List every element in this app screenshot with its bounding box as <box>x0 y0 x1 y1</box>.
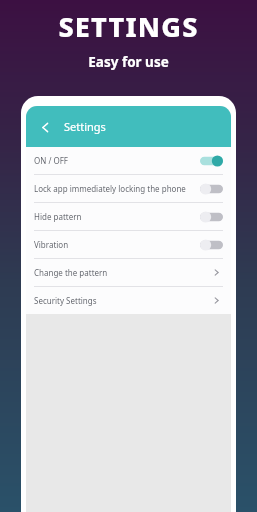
staticText: Hide pattern <box>34 211 194 222</box>
button[interactable]: Back <box>32 114 58 140</box>
button[interactable]: Toggle on <box>200 154 223 168</box>
staticText: Security Settings <box>34 295 212 306</box>
button[interactable]: Toggle off <box>200 182 223 196</box>
staticText: Change the pattern <box>34 267 212 278</box>
staticText: Settings <box>64 119 106 134</box>
button[interactable]: Change the pattern <box>26 259 231 286</box>
staticText: ON / OFF <box>34 155 194 166</box>
button[interactable]: Toggle off <box>200 238 223 252</box>
button[interactable]: Toggle off <box>200 210 223 224</box>
button[interactable]: ON / OFF <box>26 147 231 174</box>
staticText: Vibration <box>34 239 194 250</box>
staticText: SETTINGS <box>58 8 199 45</box>
button[interactable]: Security Settings <box>26 287 231 314</box>
staticText: Easy for use <box>88 53 169 71</box>
button[interactable]: Hide pattern <box>26 203 231 230</box>
button[interactable]: Vibration <box>26 231 231 258</box>
button[interactable]: Lock app immediately locking the phone <box>26 175 231 202</box>
staticText: Lock app immediately locking the phone <box>34 183 194 194</box>
